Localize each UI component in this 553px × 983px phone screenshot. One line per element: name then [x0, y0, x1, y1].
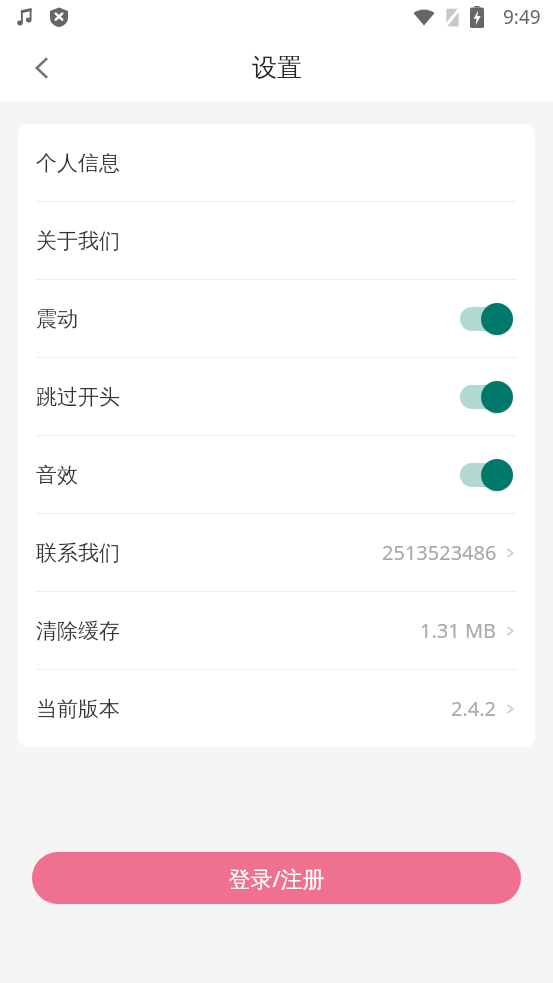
- staticText: 9:49: [503, 4, 541, 30]
- staticText: 个人信息: [36, 150, 120, 176]
- staticText: 设置: [252, 52, 302, 83]
- staticText: 当前版本: [36, 696, 120, 722]
- other: On: [460, 302, 513, 336]
- button[interactable]: 震动: [18, 280, 535, 357]
- staticText: 2513523486: [382, 539, 497, 566]
- button[interactable]: 个人信息: [18, 124, 535, 201]
- staticText: 清除缓存: [36, 618, 120, 644]
- other: On: [460, 458, 513, 492]
- staticText: 登录/注册: [228, 863, 325, 893]
- button[interactable]: 跳过开头: [18, 358, 535, 435]
- button[interactable]: Back: [16, 42, 68, 94]
- staticText: 音效: [36, 462, 78, 488]
- other: On: [460, 380, 513, 414]
- staticText: 1.31 MB: [420, 617, 497, 644]
- staticText: 联系我们: [36, 540, 120, 566]
- button[interactable]: 当前版本: [18, 670, 535, 747]
- staticText: 震动: [36, 306, 78, 332]
- button[interactable]: 关于我们: [18, 202, 535, 279]
- staticText: 关于我们: [36, 228, 120, 254]
- staticText: 跳过开头: [36, 384, 120, 410]
- button[interactable]: 联系我们: [18, 514, 535, 591]
- button[interactable]: 音效: [18, 436, 535, 513]
- button[interactable]: 登录/注册: [32, 852, 521, 904]
- button[interactable]: 清除缓存: [18, 592, 535, 669]
- staticText: 2.4.2: [451, 695, 497, 722]
